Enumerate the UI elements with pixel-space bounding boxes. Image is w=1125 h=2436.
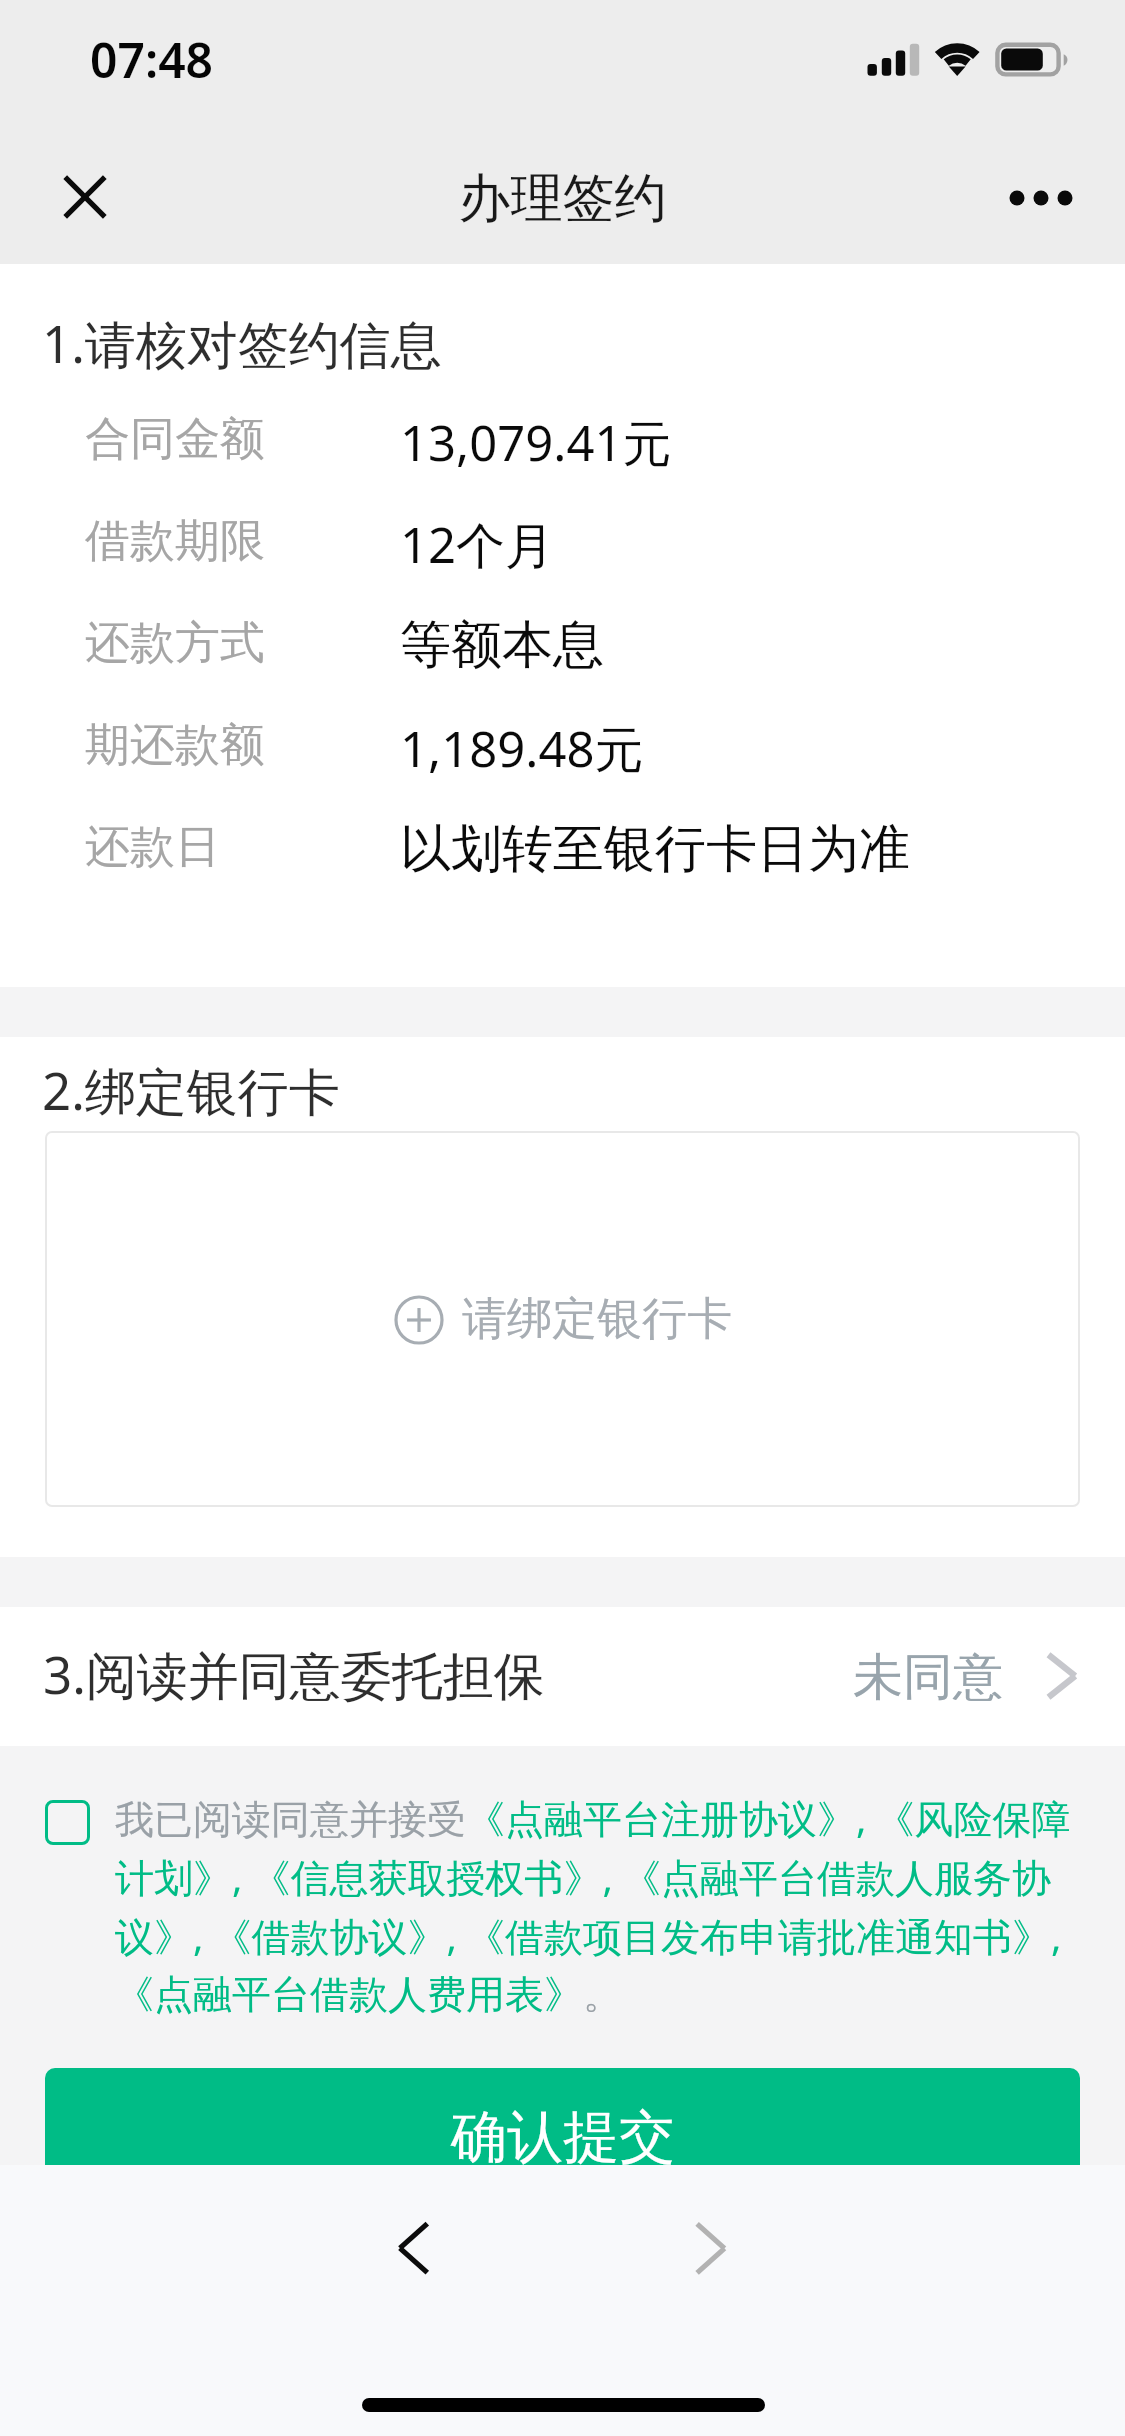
button[interactable]: More options [985, 143, 1095, 251]
staticText: 借款期限 [85, 513, 265, 570]
button[interactable]: Back [357, 2181, 471, 2313]
button[interactable]: 3.阅读并同意委托担保 [0, 1607, 1125, 1746]
button[interactable]: Close [30, 142, 140, 252]
staticText: 合同金额 [85, 411, 265, 468]
button[interactable]: Forward [654, 2181, 768, 2313]
staticText: 确认提交 [451, 2102, 675, 2173]
staticText: 3.阅读并同意委托担保 [43, 1639, 545, 1709]
staticText: 2.绑定银行卡 [42, 1055, 340, 1125]
staticText: 1,189.48元 [400, 715, 644, 782]
button[interactable]: 我已阅读同意并接受《点融平台注册协议》,《风险保障计划》,《信息获取授权书》,《… [115, 1791, 1081, 2019]
staticText: 请绑定银行卡 [462, 1291, 732, 1348]
staticText: 等额本息 [400, 613, 604, 677]
staticText: 13,079.41元 [400, 409, 672, 476]
button[interactable]: 请绑定银行卡 [45, 1131, 1080, 1507]
button[interactable]: 确认提交 [45, 2068, 1080, 2198]
staticText: 1.请核对签约信息 [42, 308, 442, 378]
staticText: 办理签约 [0, 166, 1125, 232]
staticText: 还款日 [85, 819, 220, 876]
staticText: 未同意 [853, 1646, 1003, 1709]
staticText: 期还款额 [85, 717, 265, 774]
staticText: 07:48 [90, 27, 214, 92]
staticText: 12个月 [400, 511, 555, 578]
staticText: 还款方式 [85, 615, 265, 672]
staticText: 以划转至银行卡日为准 [400, 817, 910, 881]
button[interactable]: Agree to the terms [23, 1778, 112, 1867]
